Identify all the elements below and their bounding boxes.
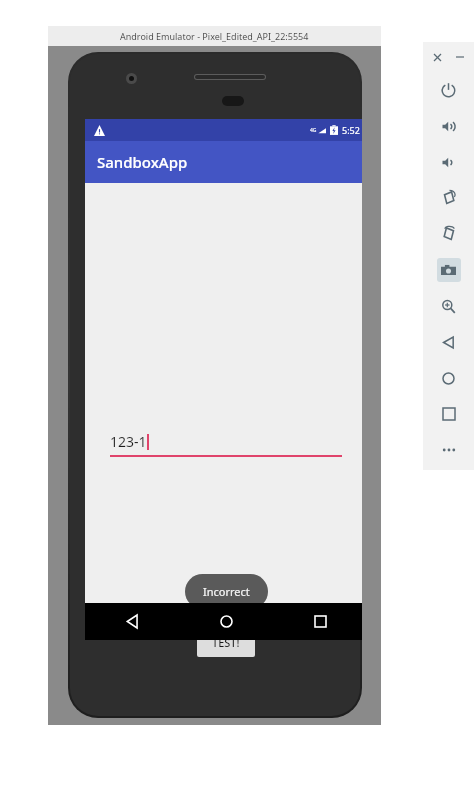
- button[interactable]: Back: [423, 324, 474, 360]
- staticText: TEST!: [212, 635, 240, 650]
- button[interactable]: Recent apps: [273, 603, 362, 640]
- button[interactable]: Volume down: [423, 144, 474, 180]
- staticText: 5:52: [342, 124, 360, 136]
- staticText: Android Emulator - Pixel_Edited_API_22:5…: [120, 30, 309, 42]
- button[interactable]: Rotate right: [423, 216, 474, 252]
- button[interactable]: Zoom: [423, 288, 474, 324]
- button[interactable]: Home: [179, 603, 273, 640]
- button[interactable]: Incorrect: [185, 574, 268, 609]
- button[interactable]: Screenshot: [423, 252, 474, 288]
- staticText: 4G: [310, 127, 317, 134]
- button[interactable]: TEST!: [197, 628, 255, 657]
- staticText: SandboxApp: [97, 152, 188, 172]
- staticText: Incorrect: [203, 584, 250, 599]
- button[interactable]: More: [423, 432, 474, 468]
- button[interactable]: Volume up: [423, 108, 474, 144]
- button[interactable]: Close: [429, 49, 445, 65]
- button[interactable]: Rotate left: [423, 180, 474, 216]
- button[interactable]: Home: [423, 360, 474, 396]
- button[interactable]: Minimize: [452, 49, 468, 65]
- button[interactable]: Overview: [423, 396, 474, 432]
- button[interactable]: Back: [85, 603, 179, 640]
- button[interactable]: Power: [423, 72, 474, 108]
- staticText: 123-1: [110, 432, 147, 451]
